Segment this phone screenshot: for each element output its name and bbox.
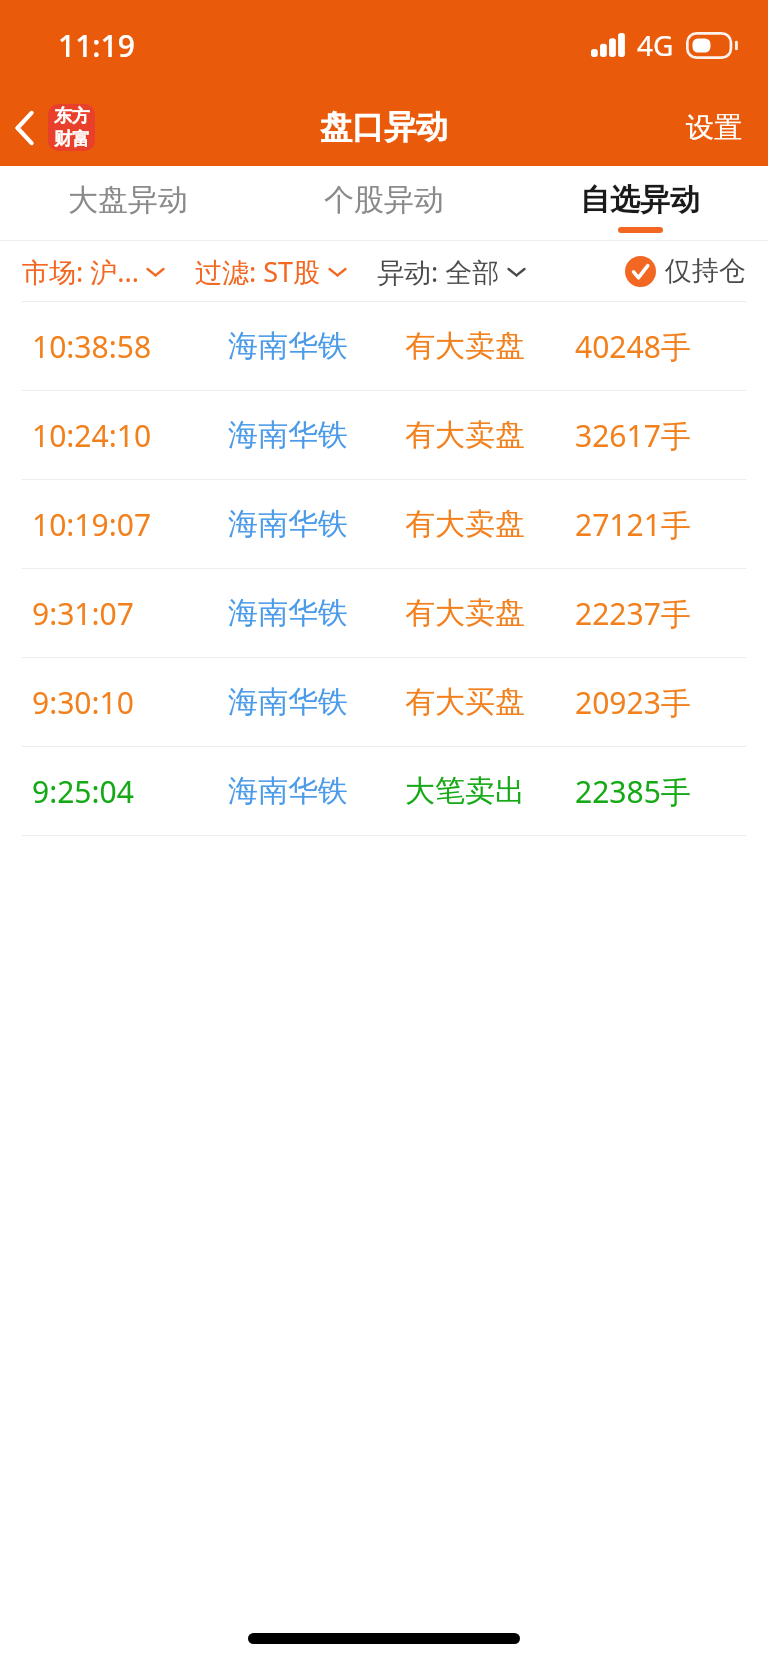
staticText: 22385手	[575, 771, 691, 812]
button[interactable]: 9:25:04	[0, 747, 768, 835]
button[interactable]: 异动: 全部	[377, 247, 526, 296]
staticText: 22237手	[575, 593, 691, 634]
staticText: 27121手	[575, 504, 691, 545]
button[interactable]: 10:24:10	[0, 391, 768, 479]
staticText: 自选异动	[580, 181, 700, 219]
staticText: 20923手	[575, 682, 691, 723]
staticText: 4G	[637, 26, 674, 64]
staticText: 过滤: ST股	[195, 253, 321, 290]
button[interactable]: 过滤: ST股	[195, 247, 347, 296]
button[interactable]: 10:38:58	[0, 302, 768, 390]
button[interactable]: 大盘异动	[0, 166, 256, 241]
staticText: 个股异动	[324, 181, 444, 219]
staticText: 9:25:04	[32, 771, 134, 812]
staticText: 东方	[54, 105, 90, 128]
staticText: 11:19	[58, 25, 135, 66]
button[interactable]: 设置	[660, 100, 768, 155]
button[interactable]: 自选异动	[512, 166, 768, 241]
staticText: 10:19:07	[32, 504, 152, 545]
staticText: 有大卖盘	[405, 327, 525, 365]
staticText: 海南华铁	[228, 683, 348, 721]
staticText: 40248手	[575, 326, 691, 367]
staticText: 市场: 沪...	[22, 253, 139, 290]
staticText: 海南华铁	[228, 416, 348, 454]
staticText: 有大卖盘	[405, 505, 525, 543]
staticText: 32617手	[575, 415, 691, 456]
staticText: 大笔卖出	[405, 772, 525, 810]
staticText: 10:38:58	[32, 326, 152, 367]
staticText: 海南华铁	[228, 327, 348, 365]
staticText: 10:24:10	[32, 415, 152, 456]
staticText: 财富	[54, 128, 90, 151]
staticText: 仅持仓	[665, 254, 746, 288]
staticText: 海南华铁	[228, 772, 348, 810]
staticText: 海南华铁	[228, 505, 348, 543]
staticText: 有大卖盘	[405, 416, 525, 454]
button[interactable]: 9:30:10	[0, 658, 768, 746]
button[interactable]: 仅持仓	[623, 248, 748, 294]
button[interactable]: 9:31:07	[0, 569, 768, 657]
staticText: 9:31:07	[32, 593, 134, 634]
staticText: 异动: 全部	[377, 253, 500, 290]
button[interactable]: 个股异动	[256, 166, 512, 241]
button[interactable]: Back	[0, 96, 107, 159]
staticText: 有大卖盘	[405, 594, 525, 632]
button[interactable]: 市场: 沪...	[22, 247, 165, 296]
staticText: 大盘异动	[68, 181, 188, 219]
staticText: 海南华铁	[228, 594, 348, 632]
staticText: 9:30:10	[32, 682, 134, 723]
staticText: 有大买盘	[405, 683, 525, 721]
staticText: 盘口异动	[320, 107, 448, 147]
button[interactable]: 10:19:07	[0, 480, 768, 568]
staticText: 设置	[686, 110, 742, 145]
